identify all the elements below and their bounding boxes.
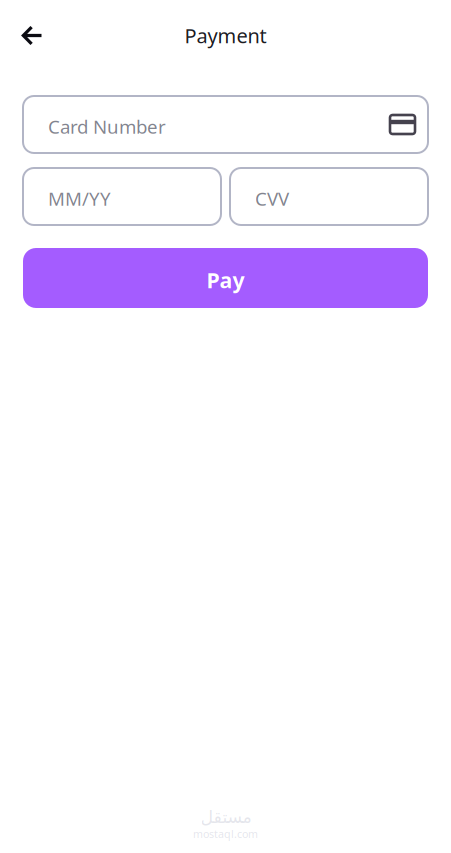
button[interactable]: Back bbox=[0, 16, 56, 55]
staticText: MM/YY bbox=[48, 186, 111, 211]
button[interactable]: Pay bbox=[23, 248, 428, 308]
button[interactable]: Card Number bbox=[23, 96, 428, 153]
staticText: مستقل bbox=[200, 807, 251, 827]
staticText: Pay bbox=[206, 266, 244, 294]
button[interactable]: MM/YY bbox=[23, 168, 221, 225]
staticText: Payment bbox=[184, 22, 266, 49]
staticText: Card Number bbox=[48, 114, 166, 139]
staticText: mostaql.com bbox=[193, 827, 258, 841]
button[interactable]: CVV bbox=[230, 168, 428, 225]
staticText: CVV bbox=[255, 186, 289, 211]
